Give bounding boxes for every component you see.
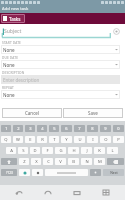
staticText: X <box>35 159 38 165</box>
button[interactable]: F <box>42 147 53 154</box>
staticText: G <box>59 148 63 154</box>
button[interactable]: 1 <box>1 125 11 132</box>
staticText: S <box>22 148 25 154</box>
staticText: DESCRIPTION <box>2 71 25 75</box>
button[interactable]: 8 <box>87 125 98 132</box>
staticText: Next <box>110 170 118 175</box>
button[interactable]: 9 <box>100 125 111 132</box>
button[interactable]: J <box>81 147 92 154</box>
staticText: START DATE <box>2 41 22 45</box>
button[interactable]: V <box>55 158 66 165</box>
button[interactable]: X <box>31 158 41 165</box>
button[interactable]: Recent apps <box>67 185 87 200</box>
button[interactable]: Voice input <box>32 169 43 176</box>
button[interactable]: W <box>13 136 23 143</box>
staticText: E <box>29 137 32 143</box>
button[interactable]: Add reminder <box>113 28 120 35</box>
staticText: 5 <box>53 126 56 131</box>
staticText: F <box>46 148 49 154</box>
button[interactable]: C <box>43 158 53 165</box>
staticText: M <box>98 159 102 165</box>
staticText: W <box>16 137 20 143</box>
button[interactable]: Period <box>90 169 101 176</box>
button[interactable]: Cancel <box>2 108 62 118</box>
button[interactable]: Enter description <box>1 75 120 84</box>
button[interactable]: None <box>1 60 120 69</box>
staticText: None <box>3 47 15 53</box>
staticText: 6 <box>65 126 68 131</box>
button[interactable]: A <box>6 147 16 154</box>
staticText: 9 <box>104 126 107 131</box>
button[interactable]: U <box>74 136 85 143</box>
button[interactable]: 6 <box>61 125 72 132</box>
button[interactable]: O <box>100 136 111 143</box>
button[interactable]: T <box>49 136 59 143</box>
staticText: D <box>33 148 37 154</box>
staticText: Save <box>88 110 98 116</box>
button[interactable]: R <box>37 136 47 143</box>
staticText: 7 <box>78 126 81 131</box>
staticText: N <box>85 159 89 165</box>
button[interactable]: Backspace <box>107 158 124 165</box>
button[interactable]: None <box>1 90 120 99</box>
staticText: Y <box>65 137 68 143</box>
staticText: H <box>72 148 76 154</box>
button[interactable]: K <box>94 147 105 154</box>
staticText: Subject <box>4 28 22 35</box>
button[interactable]: N <box>81 158 92 165</box>
staticText: P <box>117 137 120 143</box>
staticText: 8 <box>91 126 94 131</box>
staticText: ?123 <box>6 171 13 175</box>
button[interactable]: Q <box>1 136 11 143</box>
staticText: C <box>47 159 50 165</box>
button[interactable]: Tasks <box>1 14 25 23</box>
button[interactable]: D <box>30 147 40 154</box>
button[interactable]: Subject <box>1 24 120 39</box>
button[interactable]: Z <box>19 158 29 165</box>
staticText: Enter description <box>3 77 40 83</box>
button[interactable]: ?123 <box>1 169 17 176</box>
staticText: A <box>10 148 13 154</box>
button[interactable]: Split screen <box>96 185 116 200</box>
button[interactable]: 2 <box>13 125 23 132</box>
staticText: U <box>78 137 82 143</box>
staticText: Cancel <box>25 110 40 116</box>
button[interactable]: Save <box>63 108 123 118</box>
button[interactable]: Next <box>103 169 124 176</box>
button[interactable]: 7 <box>74 125 85 132</box>
button[interactable]: Emoji <box>19 169 30 176</box>
button[interactable]: Space <box>45 169 88 176</box>
button[interactable]: Y <box>61 136 72 143</box>
staticText: 4 <box>41 126 44 131</box>
button[interactable]: 0 <box>113 125 124 132</box>
staticText: Add new task <box>2 6 29 12</box>
button[interactable]: B <box>68 158 79 165</box>
button[interactable]: G <box>55 147 66 154</box>
button[interactable]: 3 <box>25 125 35 132</box>
staticText: J <box>86 148 88 154</box>
staticText: 0 <box>117 126 120 131</box>
button[interactable]: L <box>107 147 118 154</box>
staticText: None <box>3 62 15 68</box>
button[interactable]: S <box>18 147 28 154</box>
button[interactable]: 5 <box>49 125 59 132</box>
staticText: 3 <box>29 126 32 131</box>
button[interactable]: 4 <box>37 125 47 132</box>
button[interactable]: None <box>1 45 120 54</box>
staticText: R <box>41 137 44 143</box>
button[interactable]: M <box>94 158 105 165</box>
staticText: Z <box>23 159 26 165</box>
button[interactable]: I <box>87 136 98 143</box>
staticText: DUE DATE <box>2 56 19 60</box>
staticText: B <box>72 159 75 165</box>
button[interactable]: E <box>25 136 35 143</box>
button[interactable]: Shift <box>1 158 17 165</box>
button[interactable]: H <box>68 147 79 154</box>
button[interactable]: Home <box>38 185 58 200</box>
staticText: V <box>59 159 62 165</box>
button[interactable]: P <box>113 136 124 143</box>
staticText: K <box>98 148 101 154</box>
staticText: L <box>111 148 114 154</box>
staticText: None <box>3 92 15 98</box>
button[interactable]: Back <box>9 185 29 200</box>
